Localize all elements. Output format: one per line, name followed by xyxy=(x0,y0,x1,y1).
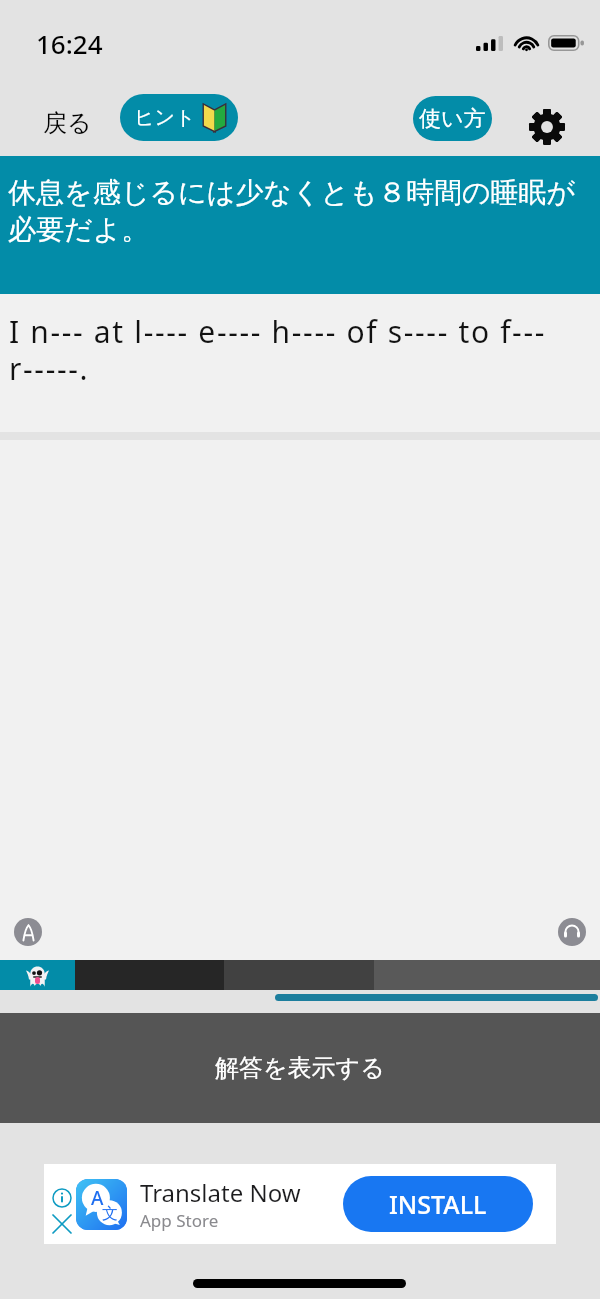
button[interactable]: Audio xyxy=(558,918,586,946)
button[interactable]: 戻る xyxy=(43,108,92,138)
button[interactable] xyxy=(0,960,75,990)
button[interactable]: Ad information xyxy=(52,1188,72,1208)
button[interactable]: 解答を表示する xyxy=(0,1013,600,1123)
staticText: 16:24 xyxy=(36,26,103,61)
button[interactable]: ヒント xyxy=(120,94,238,141)
staticText: ヒント xyxy=(134,105,196,130)
staticText: Translate Now xyxy=(140,1176,301,1209)
button[interactable]: Close ad xyxy=(52,1214,72,1234)
staticText: 文 xyxy=(102,1204,118,1224)
staticText: 使い方 xyxy=(419,105,486,133)
staticText: 休息を感じるには少なくとも８時間の睡眠が必要だよ。 xyxy=(8,175,592,247)
staticText: 解答を表示する xyxy=(215,1053,385,1083)
staticText: I n--- at l---- e---- h---- of s---- to … xyxy=(9,311,584,389)
button[interactable]: Font size xyxy=(14,918,42,946)
button[interactable]: INSTALL xyxy=(343,1176,533,1232)
staticText: INSTALL xyxy=(389,1187,487,1221)
staticText: A xyxy=(91,1185,104,1211)
staticText: App Store xyxy=(140,1209,219,1232)
button[interactable]: Settings xyxy=(525,105,569,149)
button[interactable]: 使い方 xyxy=(413,96,492,141)
